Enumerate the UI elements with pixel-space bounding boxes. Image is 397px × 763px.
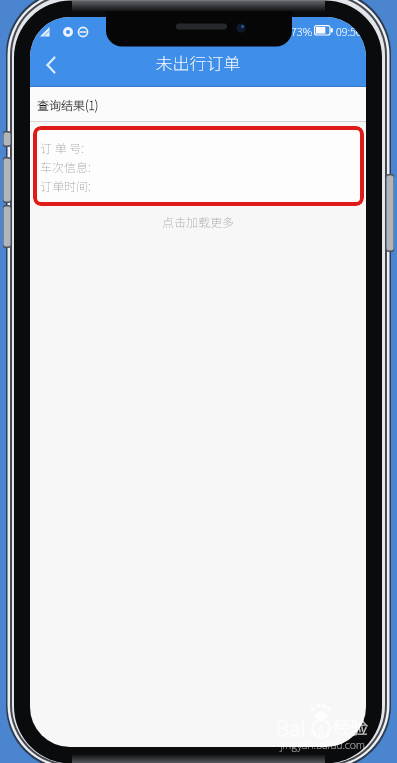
staticText: 73%	[291, 23, 313, 39]
button[interactable]	[36, 50, 66, 80]
staticText: 订单时间:	[40, 177, 91, 194]
staticText: 查询结果(1)	[37, 96, 99, 113]
staticText: 未出行订单	[30, 50, 366, 75]
staticText: 订 单 号:	[40, 139, 85, 156]
staticText: jingyan.baidu.com	[280, 737, 366, 752]
staticText: 车次信息:	[40, 158, 91, 175]
button[interactable]: 订 单 号:	[33, 126, 364, 206]
staticText: 09:56	[336, 23, 362, 39]
staticText: 经验	[333, 714, 368, 739]
staticText: 点击加载更多	[162, 213, 235, 230]
button[interactable]: 点击加载更多	[30, 206, 366, 236]
